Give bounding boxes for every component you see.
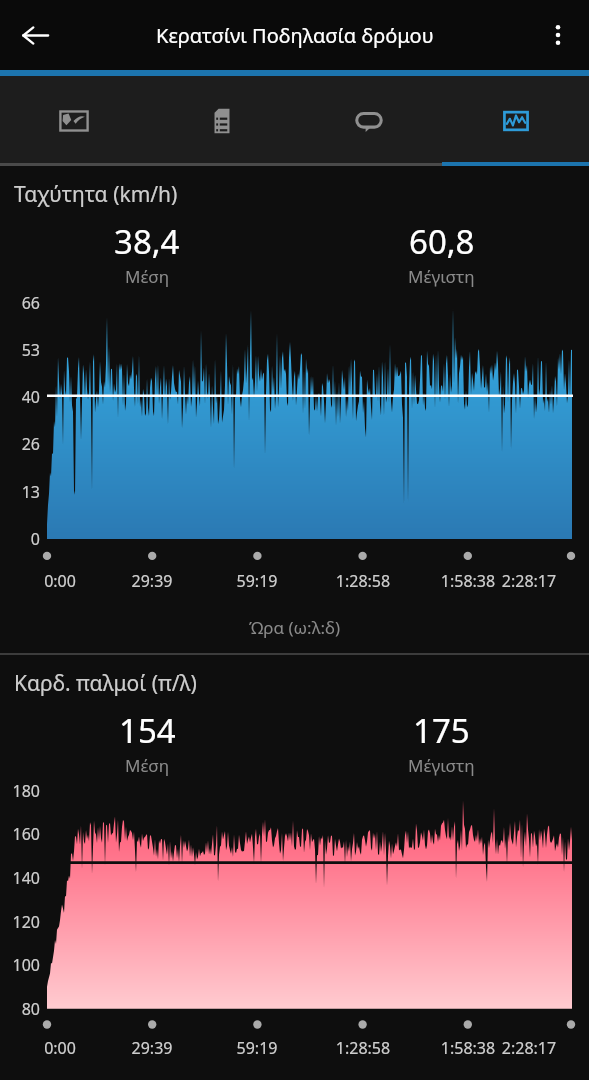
button[interactable]: Details tab bbox=[148, 76, 295, 166]
staticText: Μέγιστη bbox=[408, 754, 475, 777]
staticText: 53 bbox=[0, 339, 40, 361]
staticText: 100 bbox=[0, 954, 40, 976]
staticText: 0:00 bbox=[0, 1037, 120, 1059]
staticText: 29:39 bbox=[92, 570, 212, 592]
staticText: 1:28:58 bbox=[303, 570, 423, 592]
staticText: 0 bbox=[0, 528, 40, 550]
staticText: 59:19 bbox=[197, 1037, 317, 1059]
staticText: 40 bbox=[0, 386, 40, 408]
staticText: Καρδ. παλμοί (π/λ) bbox=[14, 669, 197, 698]
staticText: Ταχύτητα (km/h) bbox=[14, 180, 178, 209]
staticText: 180 bbox=[0, 780, 40, 802]
staticText: 59:19 bbox=[197, 570, 317, 592]
staticText: 2:28:17 bbox=[469, 570, 589, 592]
staticText: 140 bbox=[0, 867, 40, 889]
staticText: 154 bbox=[119, 708, 176, 753]
button[interactable]: More options bbox=[533, 10, 583, 60]
button[interactable]: Charts tab bbox=[442, 76, 589, 166]
staticText: Ώρα (ω:λ:δ) bbox=[0, 616, 589, 639]
staticText: 66 bbox=[0, 292, 40, 314]
staticText: 29:39 bbox=[92, 1037, 212, 1059]
staticText: 1:58:38 bbox=[408, 570, 528, 592]
staticText: 175 bbox=[413, 708, 470, 753]
staticText: 80 bbox=[0, 998, 40, 1020]
staticText: Μέση bbox=[125, 265, 170, 288]
staticText: 13 bbox=[0, 481, 40, 503]
staticText: 0:00 bbox=[0, 570, 120, 592]
staticText: 38,4 bbox=[114, 219, 180, 264]
staticText: 1:28:58 bbox=[303, 1037, 423, 1059]
staticText: Κερατσίνι Ποδηλασία δρόμου bbox=[156, 22, 434, 49]
staticText: Μέση bbox=[125, 754, 170, 777]
staticText: 60,8 bbox=[409, 219, 475, 264]
staticText: 120 bbox=[0, 911, 40, 933]
button[interactable]: Back bbox=[10, 10, 60, 60]
staticText: 2:28:17 bbox=[469, 1037, 589, 1059]
staticText: 160 bbox=[0, 823, 40, 845]
staticText: Μέγιστη bbox=[408, 265, 475, 288]
staticText: 26 bbox=[0, 433, 40, 455]
staticText: 1:58:38 bbox=[408, 1037, 528, 1059]
button[interactable]: Laps tab bbox=[295, 76, 442, 166]
button[interactable]: Map tab bbox=[0, 76, 148, 166]
